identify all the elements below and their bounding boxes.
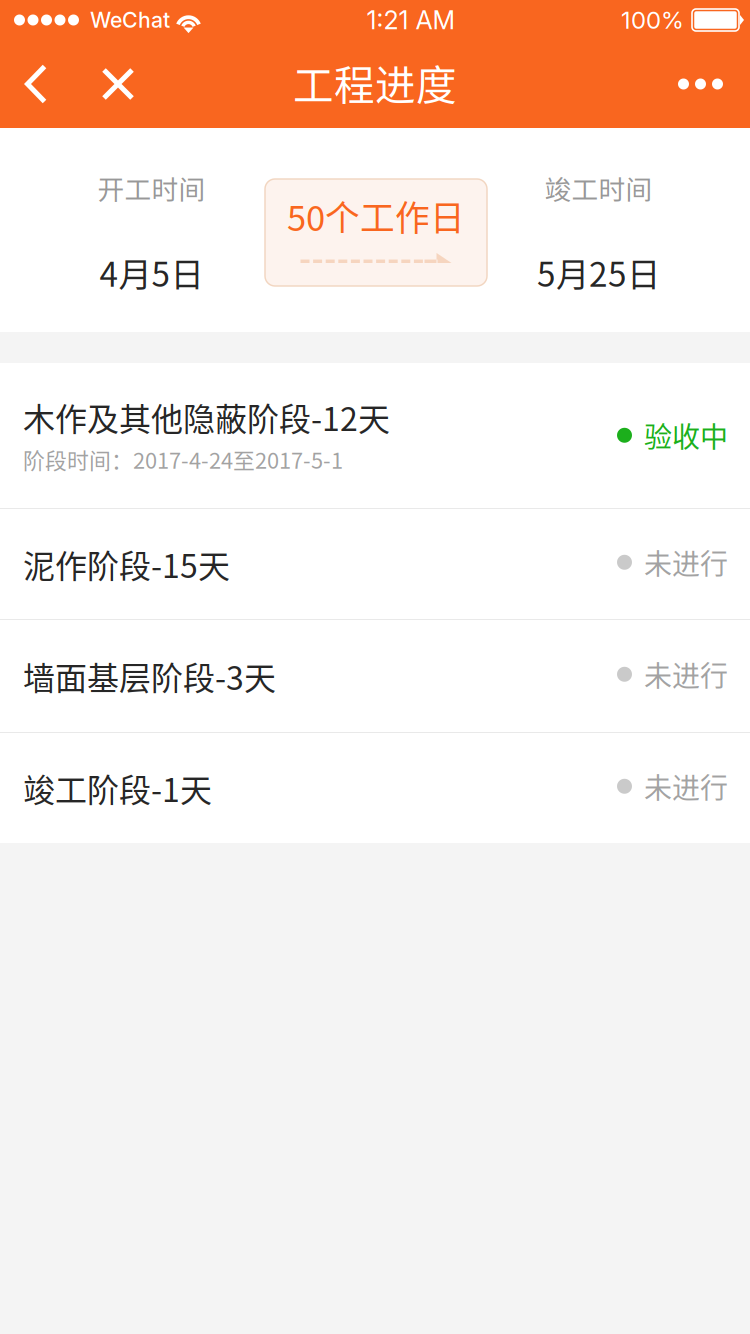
staticText: 竣工阶段-1天 xyxy=(23,765,212,811)
staticText: 木作及其他隐蔽阶段-12天 xyxy=(23,394,390,440)
staticText: 工程进度 xyxy=(293,53,457,112)
staticText: 5月25日 xyxy=(537,248,660,296)
staticText: 4月5日 xyxy=(99,248,203,296)
staticText: 1:21 AM xyxy=(366,5,455,35)
button[interactable]: 墙面基层阶段-3天 xyxy=(0,620,750,732)
staticText: 未进行 xyxy=(644,542,728,582)
staticText: 墙面基层阶段-3天 xyxy=(23,653,276,699)
button[interactable]: More xyxy=(654,40,750,128)
staticText: 验收中 xyxy=(644,415,728,455)
staticText: 竣工时间 xyxy=(544,169,652,207)
staticText: 100% xyxy=(621,5,684,34)
staticText: 开工时间 xyxy=(97,169,205,207)
staticText: WeChat xyxy=(90,7,170,33)
staticText: 50个工作日 xyxy=(287,191,465,241)
button[interactable]: 泥作阶段-15天 xyxy=(0,509,750,619)
staticText: 泥作阶段-15天 xyxy=(23,541,230,587)
button[interactable]: 木作及其他隐蔽阶段-12天 xyxy=(0,363,750,508)
staticText: 阶段时间：2017-4-24至2017-5-1 xyxy=(23,443,343,475)
button[interactable]: Back xyxy=(0,40,101,128)
button[interactable]: Close xyxy=(101,40,161,128)
button[interactable]: 竣工阶段-1天 xyxy=(0,733,750,843)
staticText: 未进行 xyxy=(644,654,728,694)
staticText: 未进行 xyxy=(644,766,728,806)
